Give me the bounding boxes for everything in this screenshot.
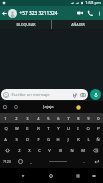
button[interactable]: 5 <box>43 113 53 123</box>
staticText: 6 <box>57 116 60 121</box>
button[interactable]: Clipboard <box>12 103 20 111</box>
button[interactable]: Escribe un mensaje <box>1 89 88 100</box>
button[interactable]: Z <box>14 145 24 156</box>
staticText: J <box>67 137 69 143</box>
staticText: N <box>70 148 74 154</box>
button[interactable]: I <box>73 123 83 134</box>
button[interactable]: Voice call <box>85 6 95 20</box>
staticText: C <box>38 148 41 154</box>
staticText: G <box>47 137 50 143</box>
button[interactable]: ?123 <box>0 156 14 167</box>
button[interactable]: 2 <box>11 113 22 123</box>
button[interactable]: BLOQUEAR <box>0 20 51 29</box>
staticText: +57 323 3211324 <box>19 10 58 17</box>
staticText: L <box>87 137 90 143</box>
staticText: Q <box>4 126 8 132</box>
staticText: BLOQUEAR <box>16 22 36 27</box>
button[interactable]: L <box>83 134 93 145</box>
button[interactable]: Video call <box>75 6 85 20</box>
staticText: AÑADIR <box>71 22 85 27</box>
button[interactable]: 1 <box>0 113 11 123</box>
staticText: X <box>28 148 31 154</box>
staticText: D <box>26 137 29 143</box>
button[interactable]: C <box>34 145 44 156</box>
staticText: , <box>30 159 32 165</box>
button[interactable]: U <box>63 123 73 134</box>
button[interactable]: J <box>63 134 73 145</box>
button[interactable]: M <box>77 145 88 156</box>
staticText: 8 <box>77 116 80 121</box>
button[interactable]: R <box>33 123 43 134</box>
staticText: O <box>86 126 90 132</box>
staticText: S <box>15 137 18 143</box>
button[interactable]: Q <box>0 123 11 134</box>
button[interactable]: S <box>11 134 22 145</box>
button[interactable]: Shift <box>0 145 14 156</box>
staticText: 1 <box>4 116 7 121</box>
button[interactable]: Back <box>17 170 29 182</box>
button[interactable]: Enter <box>89 156 103 167</box>
staticText: Z <box>18 148 21 154</box>
button[interactable]: T <box>43 123 53 134</box>
button[interactable]: Emoji <box>14 156 26 167</box>
button[interactable]: X <box>24 145 34 156</box>
staticText: 3 <box>26 116 29 121</box>
staticText: B <box>59 148 62 154</box>
staticText: E <box>26 126 29 132</box>
button[interactable]: Contact photo <box>8 9 17 18</box>
staticText: K <box>77 137 80 143</box>
button[interactable]: Ñ <box>93 134 103 145</box>
button[interactable]: A <box>0 134 11 145</box>
staticText: U <box>67 126 70 132</box>
staticText: Ñ <box>96 137 100 143</box>
button[interactable]: 7 <box>63 113 73 123</box>
staticText: R <box>37 126 40 132</box>
staticText: 9 <box>87 116 90 121</box>
button[interactable]: 8 <box>73 113 83 123</box>
button[interactable]: Back <box>0 6 8 20</box>
staticText: Jajaja <box>43 104 54 110</box>
staticText: H <box>56 137 60 143</box>
staticText: . <box>83 159 85 165</box>
button[interactable]: 6 <box>53 113 63 123</box>
button[interactable]: Google <box>1 103 9 111</box>
button[interactable]: Home <box>45 170 57 182</box>
button[interactable]: N <box>66 145 77 156</box>
button[interactable]: G <box>43 134 53 145</box>
button[interactable]: 0 <box>93 113 103 123</box>
button[interactable]: , <box>26 156 36 167</box>
button[interactable]: P <box>93 123 103 134</box>
staticText: ?123 <box>3 159 11 164</box>
staticText: W <box>15 126 19 132</box>
button[interactable]: AÑADIR <box>52 20 103 29</box>
staticText: 4 <box>37 116 40 121</box>
staticText: A <box>4 137 7 143</box>
staticText: M <box>81 148 85 154</box>
button[interactable]: W <box>11 123 22 134</box>
staticText: T <box>47 126 50 132</box>
button[interactable]: V <box>44 145 55 156</box>
button[interactable]: Record voice message <box>90 89 101 100</box>
staticText: F <box>37 137 40 143</box>
button[interactable]: H <box>53 134 63 145</box>
button[interactable]: B <box>55 145 66 156</box>
button[interactable]: +57 323 3211324 <box>19 6 75 20</box>
button[interactable]: Space <box>36 156 79 167</box>
button[interactable]: Recent apps <box>72 170 84 182</box>
staticText: 7 <box>67 116 70 121</box>
button[interactable]: F <box>33 134 43 145</box>
button[interactable]: 4 <box>33 113 43 123</box>
button[interactable]: . <box>79 156 89 167</box>
button[interactable]: Hide keyboard <box>89 171 99 181</box>
button[interactable]: More options <box>95 6 103 20</box>
button[interactable]: K <box>73 134 83 145</box>
button[interactable]: O <box>83 123 93 134</box>
button[interactable]: Backspace <box>88 145 103 156</box>
staticText: 0 <box>97 116 100 121</box>
button[interactable]: 3 <box>22 113 33 123</box>
button[interactable]: E <box>22 123 33 134</box>
button[interactable]: Y <box>53 123 63 134</box>
button[interactable]: 9 <box>83 113 93 123</box>
button[interactable]: D <box>22 134 33 145</box>
staticText: I <box>77 126 79 132</box>
